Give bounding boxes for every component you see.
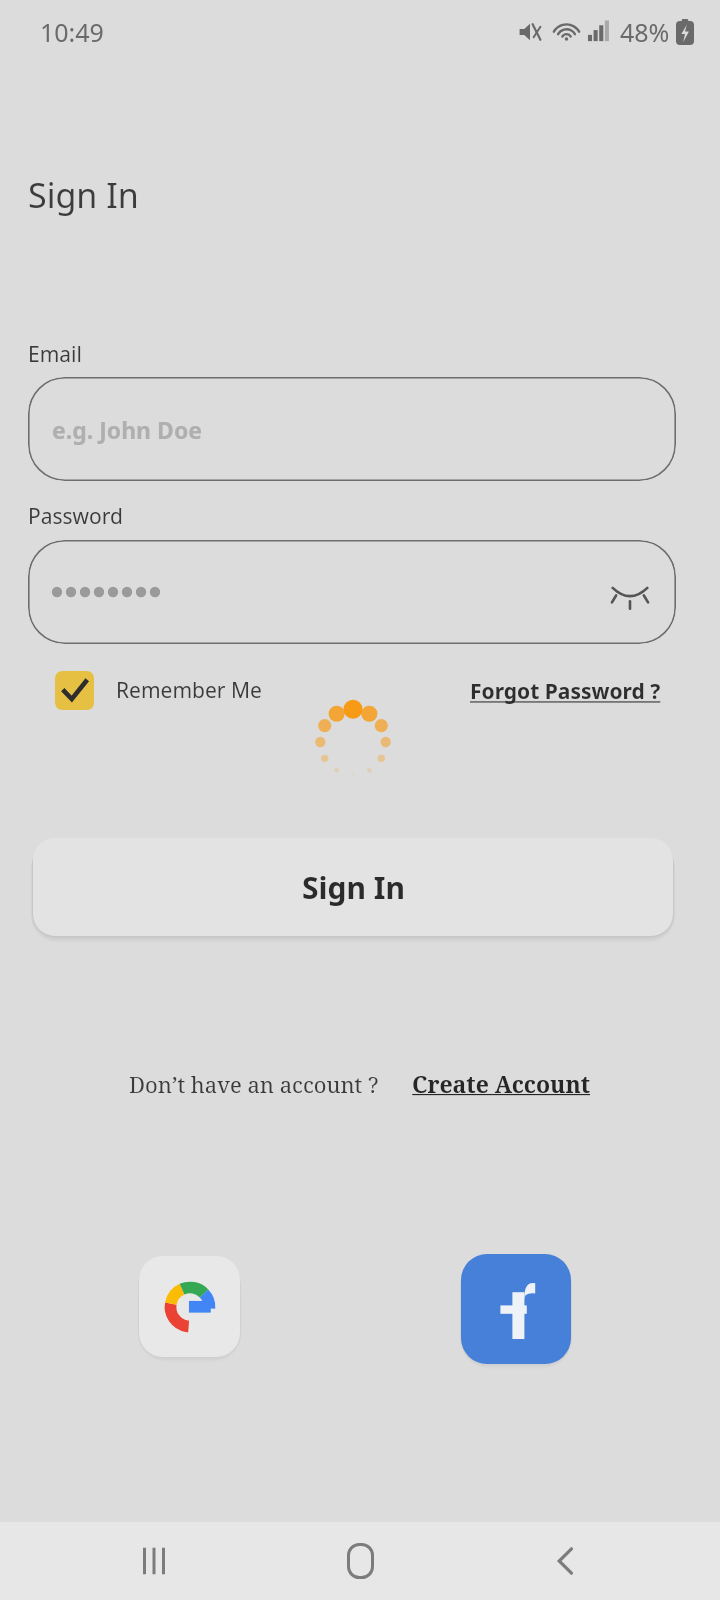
staticText: Remember Me xyxy=(116,676,262,705)
button[interactable]: Sign In xyxy=(33,838,673,936)
staticText: Create Account xyxy=(412,1068,591,1099)
button[interactable]: Remember Me xyxy=(55,671,262,710)
button[interactable]: Recents xyxy=(122,1529,186,1593)
staticText: Sign In xyxy=(302,867,405,908)
button[interactable]: Show password xyxy=(28,540,676,644)
button[interactable]: Show password xyxy=(602,564,658,620)
staticText: 10:49 xyxy=(40,15,104,49)
button[interactable]: Forgot Password ? xyxy=(470,671,661,711)
button[interactable]: e.g. John Doe xyxy=(28,377,676,481)
staticText: Password xyxy=(28,502,123,531)
button[interactable]: Sign in with Facebook xyxy=(461,1254,571,1364)
staticText: e.g. John Doe xyxy=(52,414,202,445)
button[interactable]: Back xyxy=(534,1529,598,1593)
button[interactable]: Home xyxy=(328,1529,392,1593)
staticText: Sign In xyxy=(28,172,139,218)
staticText: Forgot Password ? xyxy=(470,677,661,706)
button[interactable]: Create Account xyxy=(412,1068,591,1099)
button[interactable]: Sign in with Google xyxy=(139,1256,240,1357)
staticText: Don’t have an account ? xyxy=(129,1069,379,1099)
staticText: 48% xyxy=(620,15,670,49)
staticText: Email xyxy=(28,340,82,369)
